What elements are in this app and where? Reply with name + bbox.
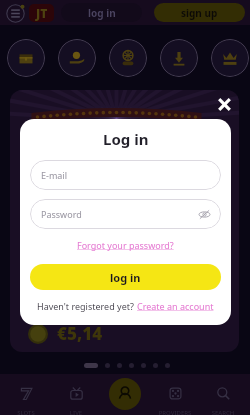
button[interactable]: SLOTS [3,374,49,415]
button[interactable]: log in [61,3,142,22]
button[interactable]: Close [212,92,236,116]
staticText: sign up [181,6,218,20]
button[interactable]: sign up [154,3,245,22]
staticText: log in [88,6,116,20]
staticText: JT [36,5,48,21]
button[interactable]: Tournaments [109,39,147,77]
staticText: Log in [103,129,149,149]
button[interactable]: SEARCH [200,374,246,415]
button[interactable]: PROVIDERS [152,374,198,415]
button[interactable]: Forgot your password? [77,239,174,251]
button[interactable]: VIP [211,39,249,77]
staticText: PROVIDERS [152,409,198,415]
staticText: Haven't registered yet? [37,300,137,312]
button[interactable]: Bonuses [7,39,45,77]
button[interactable]: Home [29,4,54,22]
button[interactable]: Create an account [137,300,214,312]
staticText: SLOTS [3,409,49,415]
staticText: €5,14 [57,322,103,345]
staticText: E-mail [41,169,68,181]
button[interactable]: €5,14 [10,90,239,352]
button[interactable]: Deposit [160,39,198,77]
staticText: log in [110,270,141,285]
staticText: LIVE [53,409,99,415]
button[interactable]: Menu [5,3,25,23]
button[interactable]: Cashback [58,39,96,77]
button[interactable]: Password [30,199,221,229]
button[interactable]: E-mail [30,160,221,190]
button[interactable]: Profile [109,378,141,410]
staticText: Password [41,208,82,220]
button[interactable]: log in [30,264,221,290]
button[interactable]: LIVE [53,374,99,415]
staticText: SEARCH [200,409,246,415]
